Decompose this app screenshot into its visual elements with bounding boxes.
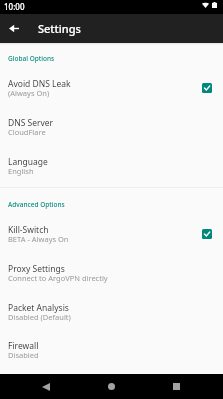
staticText: Proxy Settings xyxy=(8,263,65,275)
button[interactable]: Recent apps xyxy=(161,374,192,399)
staticText: Global Options xyxy=(8,54,55,63)
button[interactable]: Navigate up xyxy=(0,14,28,42)
button[interactable]: Proxy Settings xyxy=(0,257,223,295)
staticText: 10:00 xyxy=(4,1,25,12)
staticText: Advanced Options xyxy=(8,200,65,209)
button[interactable]: Packet Analysis xyxy=(0,296,223,334)
staticText: (Always On) xyxy=(8,88,50,98)
staticText: Language xyxy=(8,156,48,168)
staticText: Settings xyxy=(38,21,81,36)
button[interactable]: Back xyxy=(30,374,61,399)
staticText: BETA - Always On xyxy=(8,234,69,244)
button[interactable]: Avoid DNS Leak xyxy=(0,72,223,110)
staticText: CloudFlare xyxy=(8,127,46,137)
staticText: DNS Server xyxy=(8,117,54,129)
staticText: Avoid DNS Leak xyxy=(8,78,71,90)
staticText: Connect to ArgoVPN directly xyxy=(8,273,108,283)
button[interactable]: Firewall xyxy=(0,334,223,372)
staticText: Kill-Switch xyxy=(8,224,49,236)
button[interactable]: DNS Server xyxy=(0,111,223,149)
staticText: English xyxy=(8,166,34,176)
staticText: Disabled (Default) xyxy=(8,312,71,322)
staticText: Packet Analysis xyxy=(8,302,69,314)
button[interactable]: Home xyxy=(96,374,127,399)
staticText: Firewall xyxy=(8,340,39,352)
button[interactable]: Language xyxy=(0,150,223,188)
button[interactable]: Kill-Switch xyxy=(0,218,223,256)
staticText: Disabled xyxy=(8,350,39,360)
